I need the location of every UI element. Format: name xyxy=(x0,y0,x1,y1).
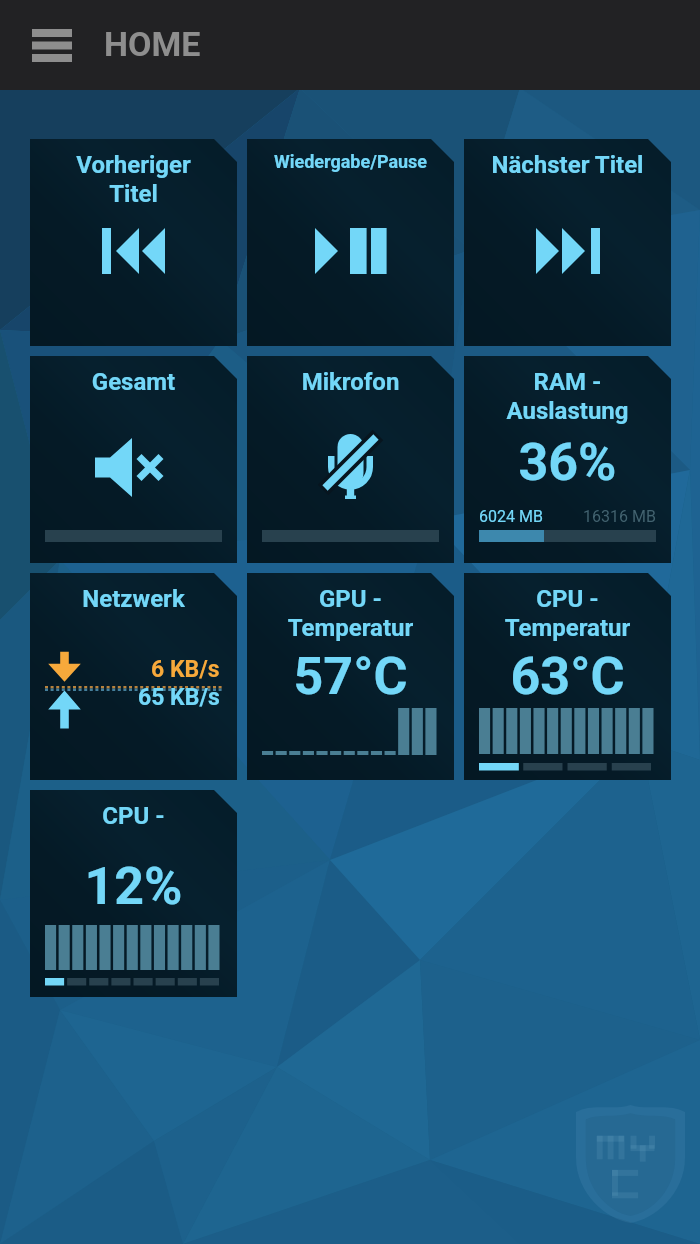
staticText: 57°C xyxy=(247,646,454,707)
staticText: 16316 MB xyxy=(583,507,656,526)
staticText: Vorheriger Titel xyxy=(33,151,234,208)
staticText: HOME xyxy=(104,24,201,64)
staticText: Gesamt xyxy=(33,368,234,396)
staticText: RAM - Auslastung xyxy=(467,368,668,425)
button[interactable]: RAM - Auslastung xyxy=(464,356,671,563)
staticText: GPU - Temperatur xyxy=(250,585,451,642)
staticText: CPU - xyxy=(33,802,234,830)
button[interactable]: CPU - xyxy=(30,790,237,997)
staticText: 6024 MB xyxy=(479,507,543,526)
button[interactable]: GPU - Temperatur xyxy=(247,573,454,780)
button[interactable]: Netzwerk xyxy=(30,573,237,780)
staticText: Mikrofon xyxy=(250,368,451,396)
button[interactable]: Vorheriger Titel xyxy=(30,139,237,346)
button[interactable]: CPU - Temperatur xyxy=(464,573,671,780)
button[interactable]: Nächster Titel xyxy=(464,139,671,346)
staticText: 63°C xyxy=(464,646,671,707)
button[interactable]: Open navigation menu xyxy=(16,14,88,76)
staticText: 6 KB/s xyxy=(151,656,220,683)
button[interactable]: Mikrofon xyxy=(247,356,454,563)
button[interactable]: Gesamt xyxy=(30,356,237,563)
staticText: Nächster Titel xyxy=(467,151,668,179)
staticText: Netzwerk xyxy=(33,585,234,613)
staticText: 36% xyxy=(464,432,671,493)
staticText: 65 KB/s xyxy=(138,684,220,711)
staticText: 12% xyxy=(30,856,237,917)
staticText: Wiedergabe/Pause xyxy=(250,151,451,172)
button[interactable]: Wiedergabe/Pause xyxy=(247,139,454,346)
staticText: CPU - Temperatur xyxy=(467,585,668,642)
